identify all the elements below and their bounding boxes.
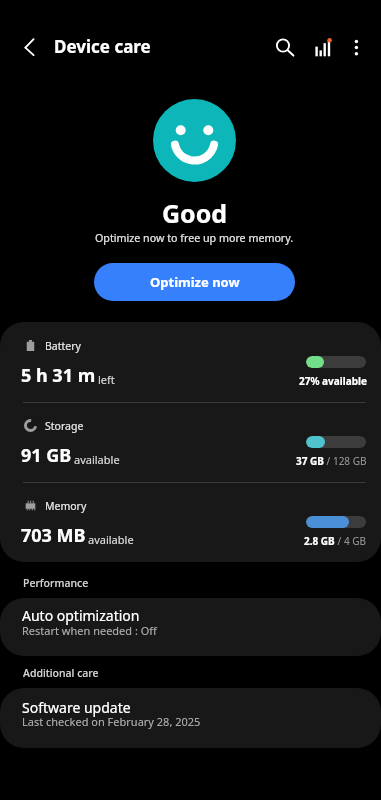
button[interactable]: Optimize now xyxy=(94,263,295,301)
staticText: 91 GB xyxy=(21,443,72,468)
staticText: available xyxy=(74,452,120,467)
staticText: / 128 GB xyxy=(324,454,367,468)
staticText: Optimize now xyxy=(150,273,240,291)
staticText: Device care xyxy=(54,35,151,58)
staticText: Additional care xyxy=(23,666,99,680)
staticText: 27% available xyxy=(299,374,367,388)
button[interactable]: Search xyxy=(263,26,303,66)
staticText: 37 GB xyxy=(296,454,324,468)
staticText: Good xyxy=(162,196,228,230)
button[interactable]: More options xyxy=(336,26,376,66)
staticText: Optimize now to free up more memory. xyxy=(95,231,294,246)
staticText: Software update xyxy=(22,698,131,717)
staticText: 2.8 GB xyxy=(304,534,335,548)
button[interactable]: Navigate up xyxy=(9,27,49,67)
button[interactable]: Memory xyxy=(0,482,381,562)
button[interactable]: Auto optimization xyxy=(0,598,381,656)
staticText: left xyxy=(98,372,115,387)
button[interactable]: Battery xyxy=(0,322,381,402)
staticText: Battery xyxy=(45,339,81,353)
staticText: Last checked on February 28, 2025 xyxy=(22,714,201,729)
button[interactable]: Usage history xyxy=(303,26,343,66)
button[interactable]: Storage xyxy=(0,402,381,482)
staticText: Performance xyxy=(23,576,89,590)
staticText: Storage xyxy=(45,419,84,433)
staticText: 703 MB xyxy=(21,523,86,548)
staticText: / 4 GB xyxy=(335,534,367,548)
staticText: 5 h 31 m xyxy=(21,363,96,388)
staticText: Restart when needed : Off xyxy=(22,623,157,638)
staticText: available xyxy=(88,532,134,547)
staticText: Auto optimization xyxy=(22,606,140,625)
staticText: Memory xyxy=(45,499,87,513)
button[interactable]: Software update xyxy=(0,688,381,748)
